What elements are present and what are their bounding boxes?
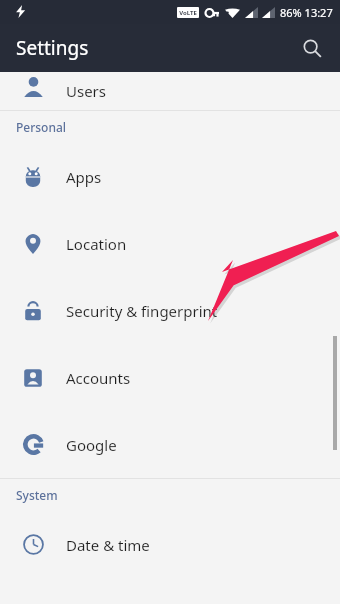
button[interactable]: Accounts xyxy=(0,344,340,411)
staticText: Location xyxy=(66,234,127,254)
staticText: Date & time xyxy=(66,535,150,555)
button[interactable]: Google xyxy=(0,411,340,478)
staticText: Settings xyxy=(16,35,89,61)
button[interactable]: Apps xyxy=(0,143,340,210)
button[interactable]: Location xyxy=(0,210,340,277)
staticText: Personal xyxy=(16,119,67,135)
staticText: Security & fingerprint xyxy=(66,301,218,321)
staticText: Users xyxy=(66,81,106,101)
button[interactable]: Date & time xyxy=(0,511,340,578)
staticText: System xyxy=(16,487,58,503)
staticText: Accounts xyxy=(66,368,131,388)
staticText: VoLTE xyxy=(179,9,197,17)
staticText: Apps xyxy=(66,167,102,187)
button[interactable]: Search xyxy=(292,28,332,68)
staticText: 86% 13:27 xyxy=(280,5,333,20)
staticText: Google xyxy=(66,435,117,455)
button[interactable]: Users xyxy=(0,72,340,110)
button[interactable]: Security & fingerprint xyxy=(0,277,340,344)
